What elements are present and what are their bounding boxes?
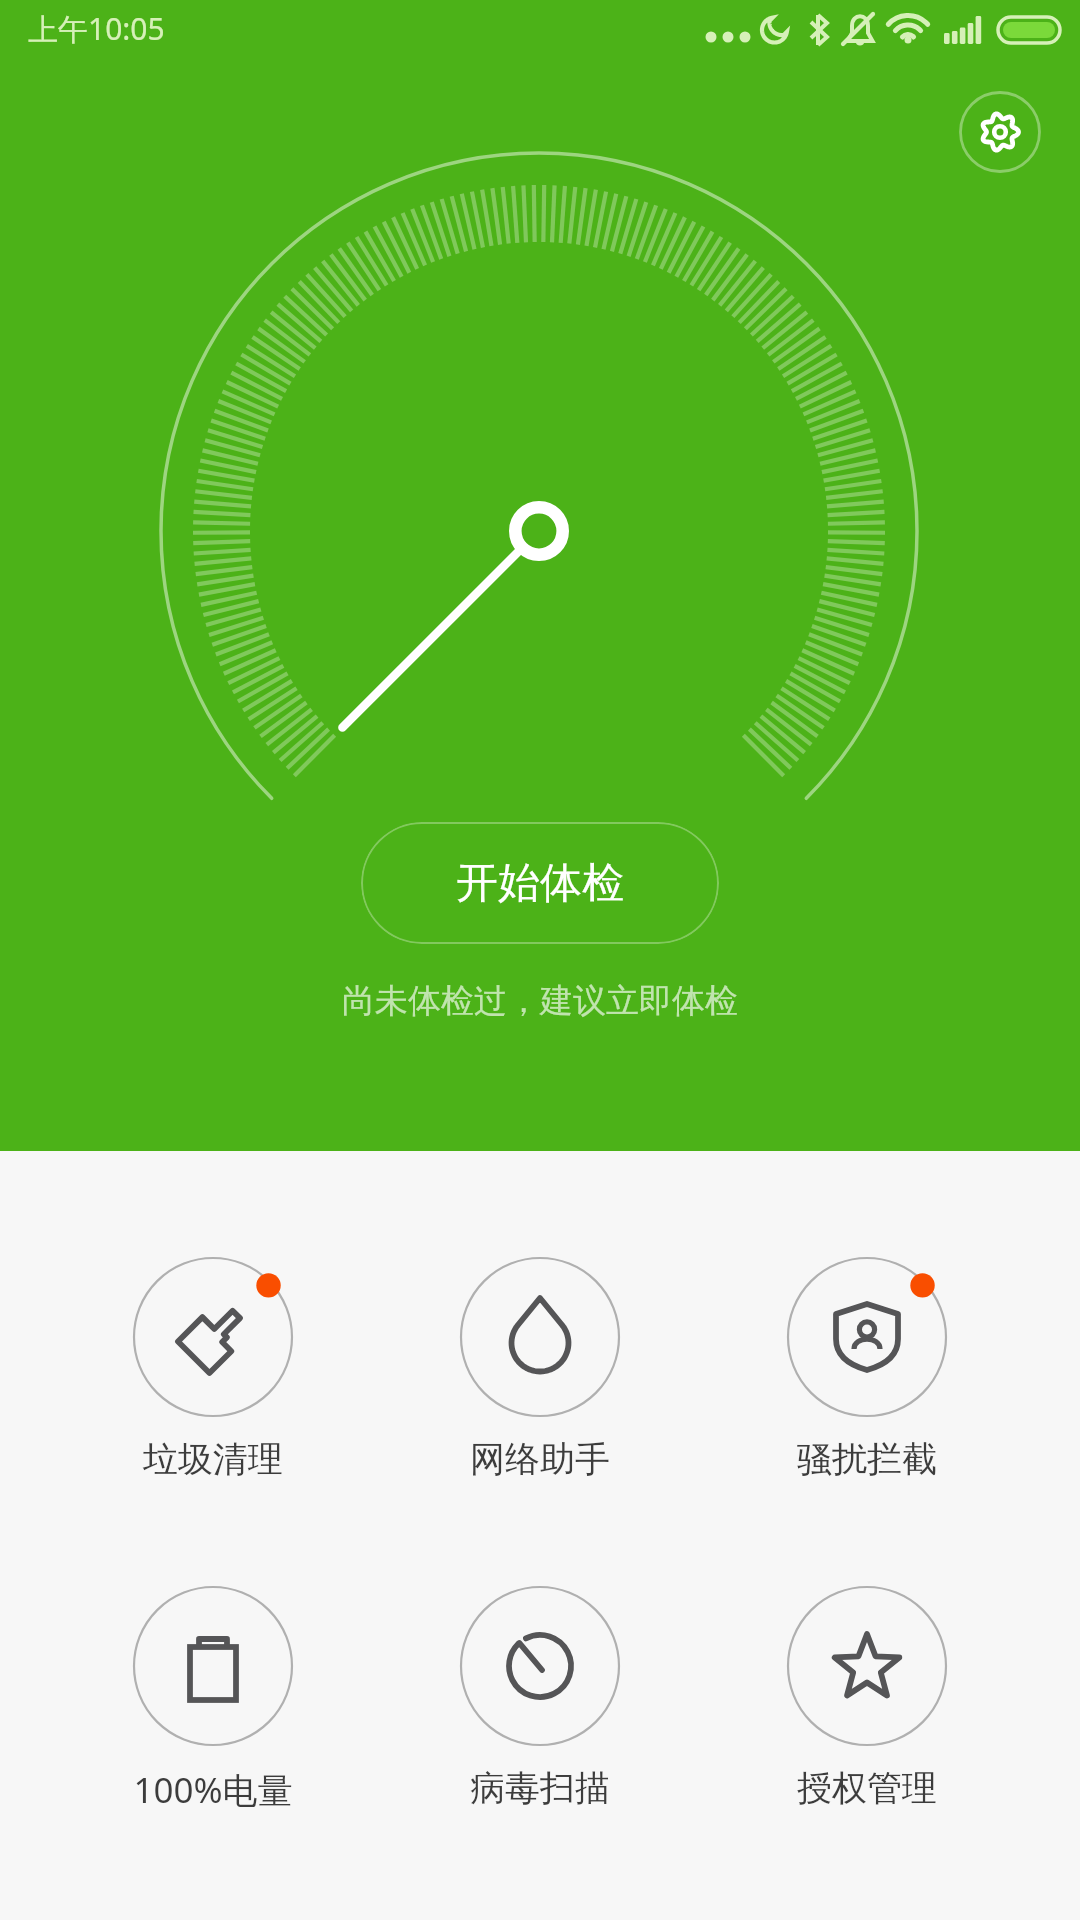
staticText: 授权管理 <box>717 1766 1017 1810</box>
button[interactable]: 网络助手 <box>390 1242 690 1481</box>
staticText: 尚未体检过，建议立即体检 <box>342 980 738 1022</box>
button[interactable]: 授权管理 <box>717 1571 1017 1810</box>
button[interactable]: 骚扰拦截 <box>717 1242 1017 1481</box>
staticText: 开始体检 <box>456 857 624 910</box>
button[interactable]: 病毒扫描 <box>390 1571 690 1810</box>
staticText: 病毒扫描 <box>390 1766 690 1810</box>
staticText: 100%电量 <box>63 1766 363 1814</box>
button[interactable]: Settings <box>952 84 1048 180</box>
button[interactable]: 100%电量 <box>63 1571 363 1814</box>
staticText: 上午10:05 <box>28 8 165 49</box>
button[interactable]: 垃圾清理 <box>63 1242 363 1481</box>
staticText: 垃圾清理 <box>63 1437 363 1481</box>
staticText: 网络助手 <box>390 1437 690 1481</box>
button[interactable]: 开始体检 <box>361 822 719 944</box>
staticText: 骚扰拦截 <box>717 1437 1017 1481</box>
